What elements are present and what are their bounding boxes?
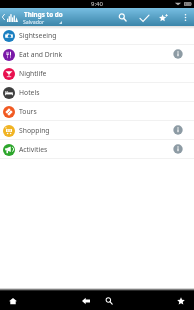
button[interactable]: Search bbox=[99, 291, 118, 310]
button[interactable]: Home bbox=[3, 291, 22, 310]
button[interactable]: More info bbox=[169, 45, 187, 63]
button[interactable]: Shopping bbox=[0, 121, 194, 140]
staticText: Nightlife bbox=[19, 69, 47, 78]
staticText: 9:40 bbox=[91, 0, 103, 8]
button[interactable]: Activities bbox=[0, 140, 194, 159]
button[interactable]: Eat and Drink bbox=[0, 45, 194, 64]
button[interactable]: Tours bbox=[0, 102, 194, 121]
staticText: Things to do bbox=[24, 10, 63, 19]
button[interactable]: Back bbox=[76, 291, 95, 310]
button[interactable]: More info bbox=[169, 121, 187, 139]
staticText: Salvador bbox=[23, 18, 45, 25]
staticText: Activities bbox=[19, 145, 48, 154]
button[interactable]: Favorites bbox=[171, 291, 190, 310]
button[interactable]: Add to favorites bbox=[154, 8, 172, 26]
staticText: Hotels bbox=[19, 88, 40, 97]
button[interactable]: More options bbox=[176, 8, 194, 26]
button[interactable]: Sightseeing bbox=[0, 26, 194, 45]
button[interactable]: Mark as done bbox=[135, 9, 153, 27]
staticText: Shopping bbox=[19, 126, 50, 135]
staticText: Tours bbox=[19, 107, 37, 116]
staticText: Eat and Drink bbox=[19, 50, 63, 59]
button[interactable]: More info bbox=[169, 140, 187, 158]
button[interactable]: Nightlife bbox=[0, 64, 194, 83]
button[interactable]: Navigate up bbox=[0, 8, 7, 26]
staticText: Sightseeing bbox=[19, 31, 57, 40]
button[interactable]: Hotels bbox=[0, 83, 194, 102]
button[interactable]: Search bbox=[113, 8, 131, 26]
